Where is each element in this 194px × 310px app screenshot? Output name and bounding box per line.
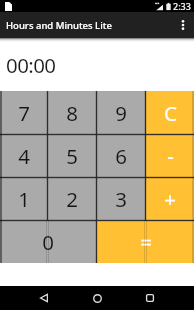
button[interactable]: + bbox=[146, 178, 194, 220]
button[interactable]: 0 bbox=[0, 221, 96, 263]
staticText: 0 bbox=[42, 228, 54, 256]
button[interactable]: Recents bbox=[136, 286, 164, 310]
button[interactable]: Back bbox=[30, 286, 58, 310]
staticText: 2:33 bbox=[173, 0, 191, 12]
button[interactable]: = bbox=[97, 221, 194, 263]
staticText: C bbox=[164, 99, 177, 127]
button[interactable]: 2 bbox=[48, 178, 96, 220]
staticText: 5 bbox=[66, 142, 78, 170]
staticText: Hours and Minutes Lite bbox=[6, 19, 112, 32]
button[interactable]: 9 bbox=[97, 91, 145, 134]
staticText: - bbox=[167, 142, 174, 170]
button[interactable]: 6 bbox=[97, 135, 145, 177]
staticText: 3 bbox=[115, 185, 127, 213]
staticText: 7 bbox=[18, 99, 30, 127]
button[interactable]: Home bbox=[83, 286, 111, 310]
button[interactable]: 8 bbox=[48, 91, 96, 134]
staticText: 6 bbox=[115, 142, 127, 170]
button[interactable]: More options bbox=[172, 12, 194, 38]
staticText: 1 bbox=[18, 185, 30, 213]
staticText: 8 bbox=[66, 99, 78, 127]
staticText: + bbox=[164, 185, 176, 213]
staticText: 00:00 bbox=[6, 51, 56, 79]
staticText: = bbox=[140, 228, 152, 256]
button[interactable]: 5 bbox=[48, 135, 96, 177]
staticText: 9 bbox=[115, 99, 127, 127]
button[interactable]: 4 bbox=[0, 135, 47, 177]
staticText: 2 bbox=[66, 185, 78, 213]
staticText: 4 bbox=[18, 142, 30, 170]
button[interactable]: - bbox=[146, 135, 194, 177]
button[interactable]: 3 bbox=[97, 178, 145, 220]
button[interactable]: 7 bbox=[0, 91, 47, 134]
button[interactable]: C bbox=[146, 91, 194, 134]
button[interactable]: 1 bbox=[0, 178, 47, 220]
